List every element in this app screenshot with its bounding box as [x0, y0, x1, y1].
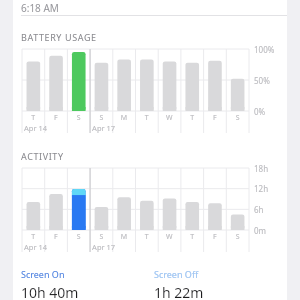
staticText: BATTERY USAGE: [21, 31, 97, 43]
staticText: Screen On: [21, 268, 65, 280]
staticText: 1h 22m: [154, 283, 204, 300]
staticText: 10h 40m: [21, 283, 79, 300]
button[interactable]: Screen Off: [154, 268, 287, 300]
staticText: Screen Off: [154, 268, 199, 280]
staticText: ACTIVITY: [21, 150, 64, 162]
button[interactable]: BATTERY USAGE: [21, 31, 287, 43]
button[interactable]: 6:18 AM: [13, 0, 287, 15]
button[interactable]: ACTIVITY: [21, 150, 287, 162]
button[interactable]: [13, 49, 287, 135]
staticText: 6:18 AM: [21, 1, 59, 15]
button[interactable]: Screen On: [21, 268, 154, 300]
button[interactable]: [13, 168, 287, 254]
